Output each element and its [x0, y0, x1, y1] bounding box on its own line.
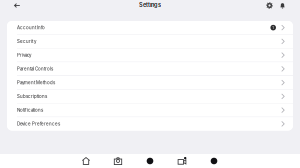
staticText: Security [17, 39, 36, 44]
staticText: Account Info [17, 25, 45, 30]
staticText: 1 [272, 25, 274, 30]
button[interactable]: Video [170, 154, 194, 168]
button[interactable]: App settings [263, 1, 276, 9]
staticText: Subscriptions [17, 94, 47, 99]
staticText: Privacy [17, 52, 31, 58]
staticText: Settings [139, 1, 161, 8]
button[interactable]: Payment Methods [7, 76, 293, 89]
button[interactable]: Notifications [276, 1, 289, 9]
button[interactable]: Security [7, 35, 293, 48]
button[interactable]: Home [74, 154, 98, 168]
button[interactable]: Profile [138, 154, 162, 168]
staticText: Parental Controls [17, 66, 53, 71]
button[interactable]: Device Preferences [7, 117, 293, 130]
button[interactable]: Account Info [7, 21, 293, 34]
button[interactable]: More [202, 154, 226, 168]
button[interactable]: Photos [106, 154, 130, 168]
staticText: Notifications [17, 107, 43, 113]
button[interactable]: Back [7, 1, 27, 9]
staticText: Payment Methods [17, 80, 55, 85]
button[interactable]: Subscriptions [7, 90, 293, 103]
button[interactable]: Parental Controls [7, 62, 293, 75]
button[interactable]: Privacy [7, 48, 293, 62]
button[interactable]: Notifications [7, 103, 293, 117]
staticText: Device Preferences [17, 121, 60, 126]
